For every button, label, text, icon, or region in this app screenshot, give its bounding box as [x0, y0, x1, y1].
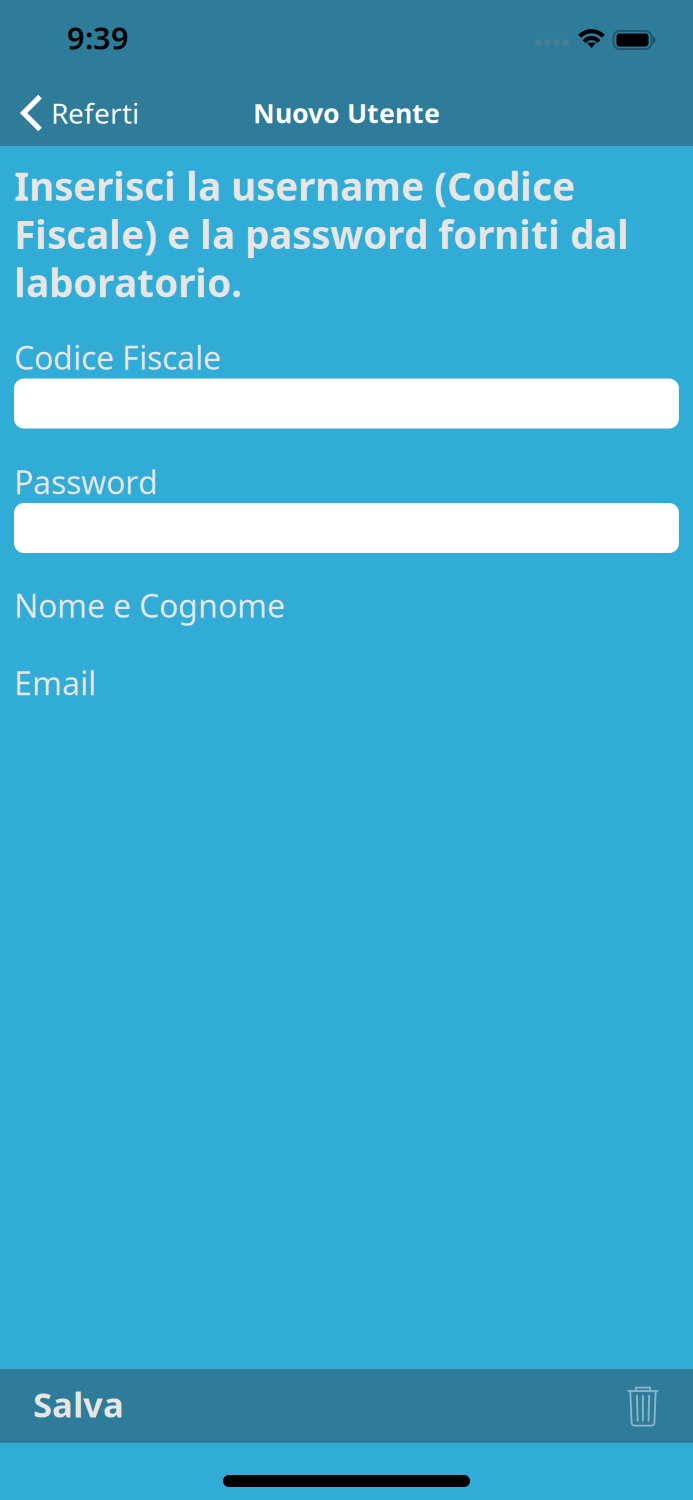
button[interactable]: Referti: [0, 86, 151, 140]
staticText: Nome e Cognome: [14, 584, 285, 626]
staticText: Email: [14, 661, 96, 704]
staticText: Password: [14, 460, 158, 503]
staticText: 9:39: [67, 17, 129, 58]
staticText: Referti: [51, 94, 139, 132]
button[interactable]: Elimina: [609, 1375, 693, 1437]
staticText: Codice Fiscale: [14, 336, 221, 378]
staticText: Nuovo Utente: [253, 95, 440, 131]
button[interactable]: [14, 503, 679, 553]
button[interactable]: Salva: [0, 1371, 142, 1441]
staticText: Salva: [33, 1381, 124, 1427]
staticText: Inserisci la username (Codice Fiscale) e…: [14, 160, 629, 308]
button[interactable]: [14, 378, 679, 428]
